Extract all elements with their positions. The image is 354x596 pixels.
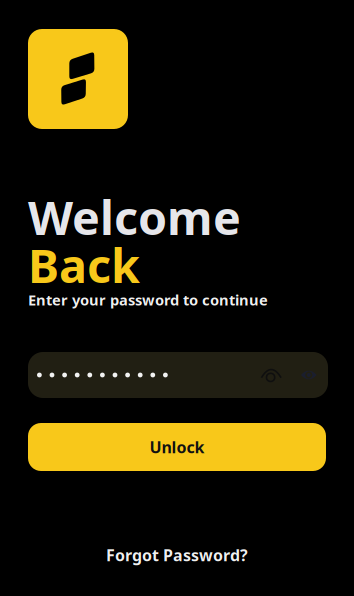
staticText: Unlock: [149, 436, 204, 458]
button[interactable]: Forgot Password?: [0, 543, 354, 567]
staticText: Welcome: [28, 186, 241, 248]
button[interactable]: Unlock: [28, 423, 326, 471]
staticText: Enter your password to continue: [28, 290, 268, 309]
staticText: Back: [28, 234, 140, 296]
staticText: Forgot Password?: [106, 544, 248, 566]
